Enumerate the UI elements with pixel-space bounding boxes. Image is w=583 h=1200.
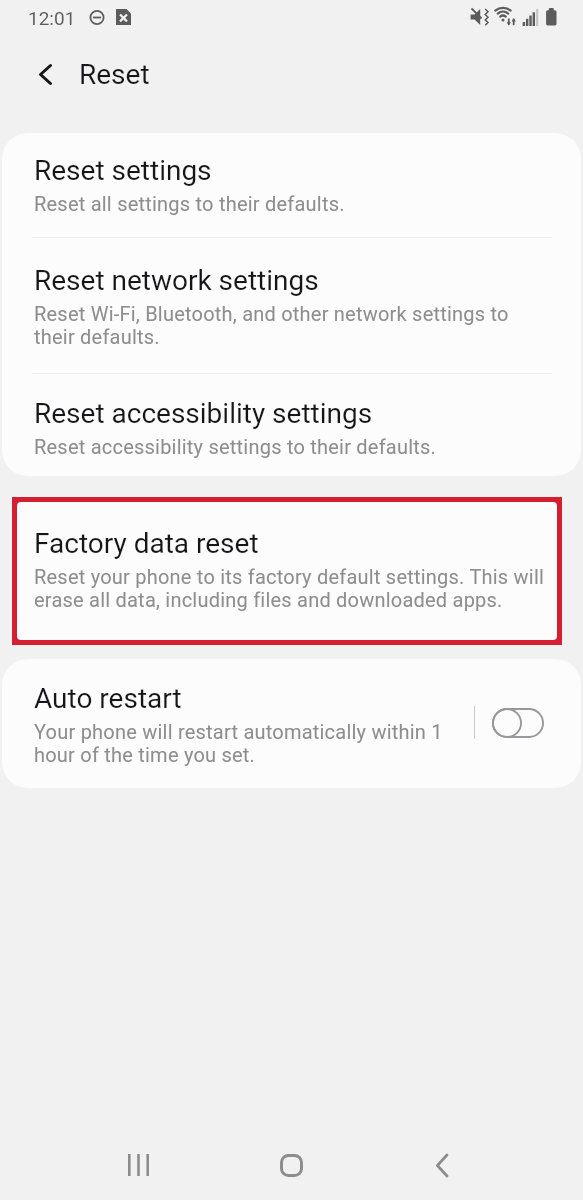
staticText: Reset — [79, 58, 150, 91]
button[interactable]: Reset accessibility settings — [2, 374, 581, 476]
staticText: Reset Wi-Fi, Bluetooth, and other networ… — [34, 302, 534, 348]
staticText: Your phone will restart automatically wi… — [34, 720, 460, 766]
button[interactable]: Navigate up — [21, 50, 69, 98]
button[interactable]: Auto restart — [492, 708, 544, 738]
button[interactable]: Auto restart — [2, 659, 470, 788]
staticText: Reset your phone to its factory default … — [34, 565, 553, 611]
staticText: Factory data reset — [34, 527, 259, 560]
button[interactable]: Recent apps — [114, 1141, 162, 1189]
button[interactable]: Reset settings — [2, 133, 581, 237]
button[interactable]: Home — [267, 1141, 315, 1189]
button[interactable]: Factory data reset — [17, 502, 557, 640]
button[interactable]: Back — [418, 1141, 466, 1189]
button[interactable]: Reset network settings — [2, 238, 581, 373]
staticText: 12:01 — [28, 7, 76, 29]
staticText: Reset settings — [34, 154, 212, 187]
staticText: Auto restart — [34, 682, 182, 715]
staticText: Reset accessibility settings — [34, 397, 373, 430]
staticText: Reset network settings — [34, 264, 319, 297]
staticText: Reset all settings to their defaults. — [34, 192, 345, 215]
staticText: Reset accessibility settings to their de… — [34, 435, 437, 458]
